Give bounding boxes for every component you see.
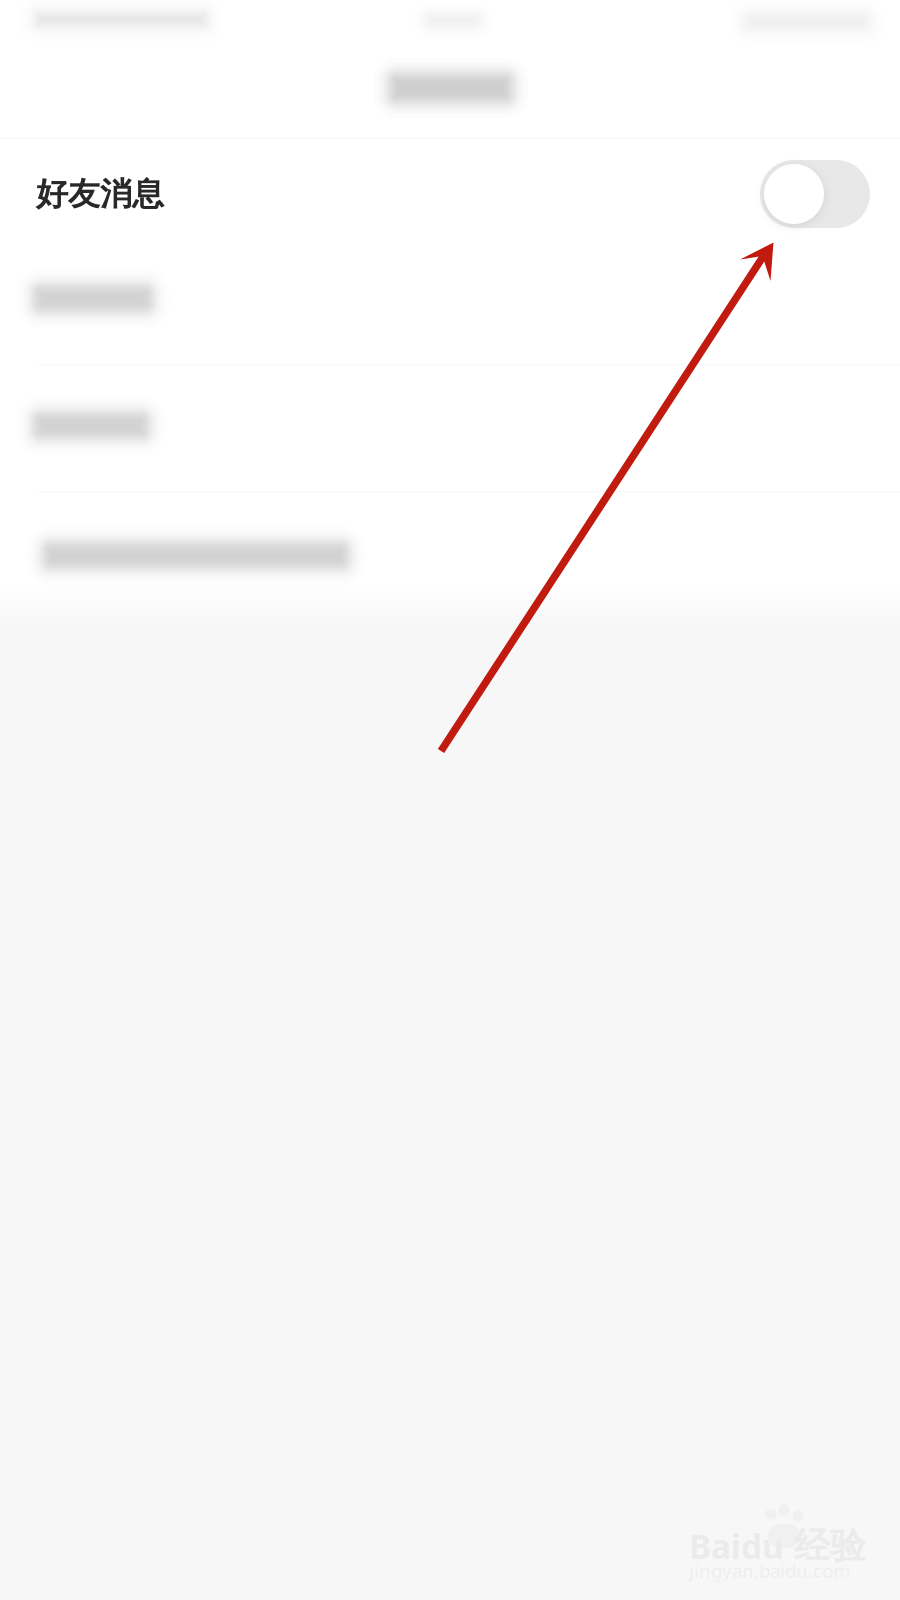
button[interactable]: Settings row xyxy=(0,240,900,367)
button[interactable]: Settings row xyxy=(0,494,900,621)
staticText: 好友消息 xyxy=(36,174,164,214)
staticText: jingyan.baidu.com xyxy=(689,1558,850,1583)
button[interactable]: Settings row xyxy=(0,367,900,494)
staticText: Baidu xyxy=(689,1524,784,1568)
staticText: 经验 xyxy=(794,1524,866,1568)
button[interactable]: 好友消息 xyxy=(0,148,900,240)
